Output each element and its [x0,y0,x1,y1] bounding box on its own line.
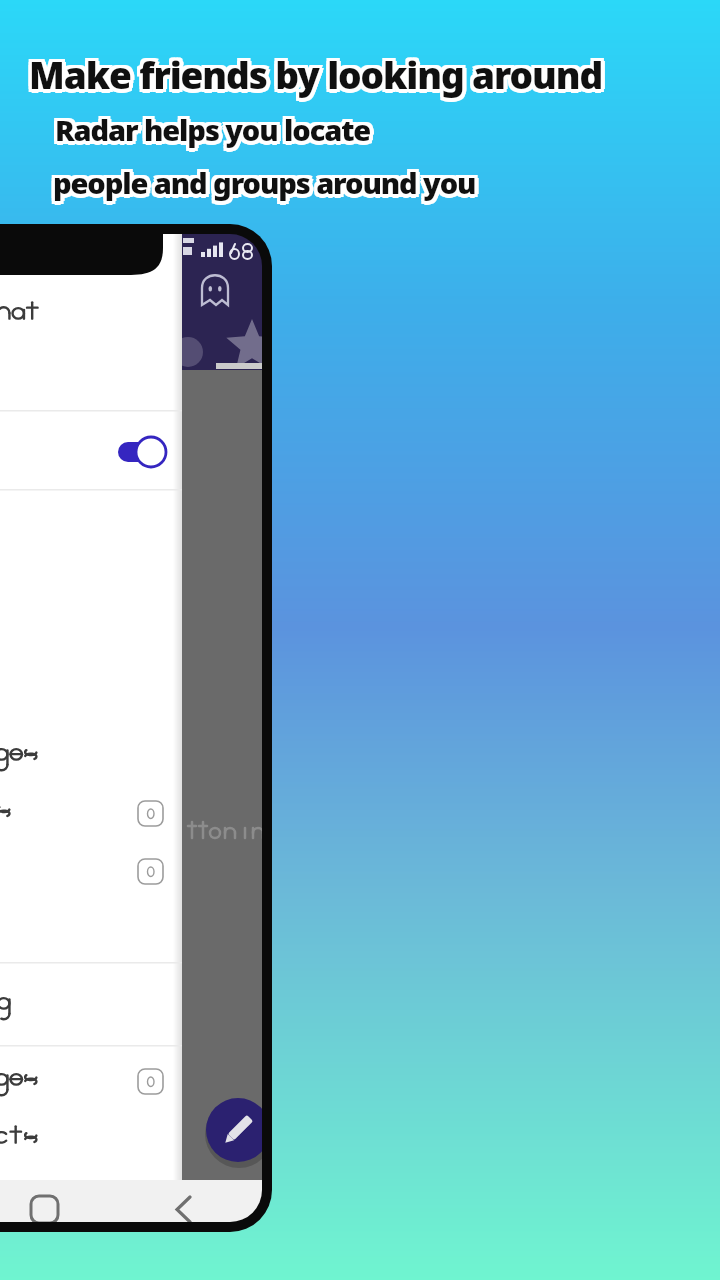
button[interactable]: Toggle setting [0,415,182,487]
button[interactable]: Back [160,1188,212,1230]
staticText: Make friends by looking around [26,52,600,102]
staticText: Radar helps you locate [52,110,368,149]
staticText: Make friends by looking around [33,49,607,99]
staticText: Make friends by looking around [29,46,603,96]
button[interactable] [0,1113,182,1169]
staticText: Radar helps you locate [58,107,374,146]
staticText: people and groups around you [50,163,473,202]
staticText: Make friends by looking around [32,52,606,102]
staticText: Make friends by looking around [29,49,603,99]
staticText: Make friends by looking around [26,46,600,96]
staticText: people and groups around you [53,160,476,199]
button[interactable] [0,730,182,786]
staticText: people and groups around you [56,160,479,199]
staticText: Radar helps you locate [58,113,374,152]
staticText: people and groups around you [53,163,476,202]
staticText: Radar helps you locate [55,114,371,153]
staticText: people and groups around you [57,163,480,202]
button[interactable] [0,1055,182,1111]
button[interactable] [0,790,182,846]
staticText: Radar helps you locate [52,107,368,146]
staticText: Radar helps you locate [55,107,371,146]
staticText: people and groups around you [50,166,473,205]
staticText: people and groups around you [50,160,473,199]
staticText: Radar helps you locate [52,113,368,152]
button[interactable]: Compose message [206,1098,270,1162]
staticText: Make friends by looking around [29,53,603,103]
staticText: Make friends by looking around [32,46,606,96]
staticText: Make friends by looking around [26,49,600,99]
staticText: Radar helps you locate [55,110,371,149]
button[interactable]: Home [18,1188,70,1230]
button[interactable] [0,280,182,408]
button[interactable] [0,975,182,1041]
staticText: Radar helps you locate [59,110,375,149]
staticText: people and groups around you [53,167,476,206]
button[interactable] [0,848,182,904]
staticText: people and groups around you [56,166,479,205]
